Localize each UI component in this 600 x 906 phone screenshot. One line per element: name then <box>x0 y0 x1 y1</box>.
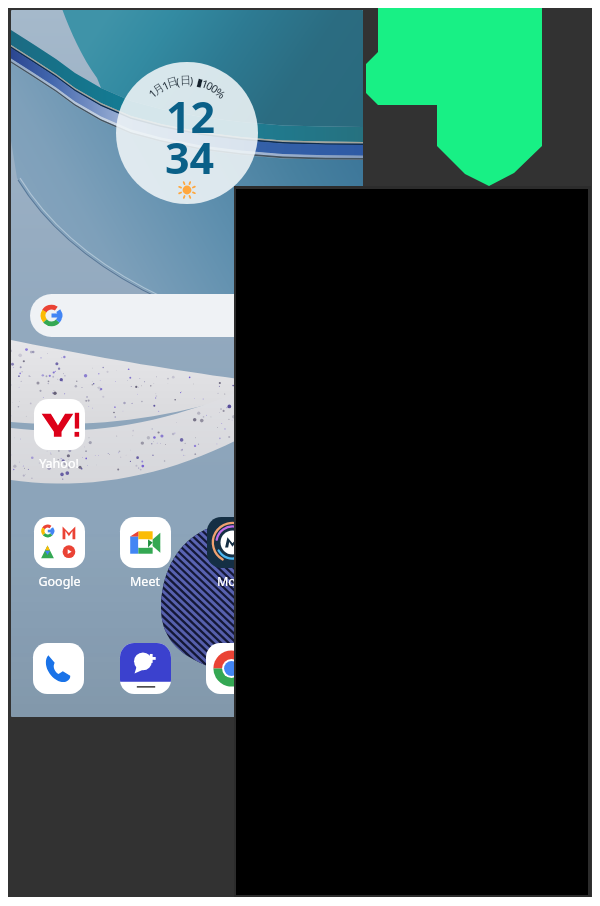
staticText: Meet <box>130 573 160 590</box>
staticText: Yahoo! <box>39 455 79 472</box>
staticText <box>194 74 199 89</box>
staticText: 月 <box>150 80 167 98</box>
staticText: ▮ <box>195 75 205 90</box>
staticText: 0 <box>204 77 217 94</box>
staticText: 12 <box>166 87 216 146</box>
staticText: % <box>212 84 229 102</box>
button[interactable]: Google <box>22 517 96 590</box>
staticText: 日 <box>180 73 191 87</box>
button[interactable] <box>30 294 348 337</box>
button[interactable]: Moto <box>195 517 269 590</box>
staticText: 34 <box>165 128 215 187</box>
button[interactable]: 1 <box>116 62 258 204</box>
staticText: Moto <box>217 573 248 590</box>
button[interactable]: SoftBank <box>120 643 171 694</box>
staticText: ) <box>189 73 195 88</box>
staticText: ( <box>175 74 181 89</box>
staticText: 1 <box>159 77 172 94</box>
button[interactable]: Chrome <box>206 643 257 694</box>
staticText: 1 <box>199 75 211 92</box>
staticText: Google <box>38 573 81 590</box>
button[interactable]: Meet <box>108 517 182 590</box>
button[interactable]: Yahoo! <box>22 399 96 472</box>
staticText: 1 <box>145 85 160 101</box>
staticText: 日 <box>165 74 180 90</box>
staticText: 0 <box>208 80 222 97</box>
button[interactable]: Phone <box>33 643 84 694</box>
